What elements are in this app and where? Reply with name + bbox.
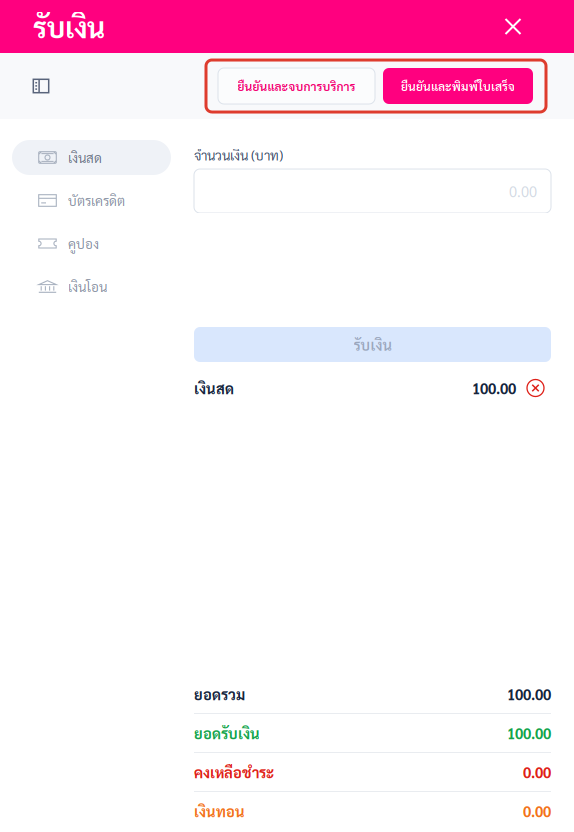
staticText: รับเงิน — [353, 335, 391, 354]
staticText: 0.00 — [509, 181, 537, 201]
button[interactable]: รับเงิน — [194, 327, 551, 362]
staticText: ยอดรวม — [194, 684, 245, 704]
button[interactable]: เงินโอน — [12, 269, 171, 304]
button[interactable]: Close — [491, 4, 535, 48]
button[interactable]: ยืนยันและจบการบริการ — [218, 68, 375, 104]
staticText: 0.00 — [523, 762, 551, 782]
button[interactable]: บัตรเครดิต — [12, 183, 171, 218]
staticText: ยืนยันและจบการบริการ — [237, 78, 355, 94]
staticText: บัตรเครดิต — [68, 192, 125, 209]
staticText: รับเงิน — [33, 8, 105, 45]
staticText: 100.00 — [472, 378, 516, 398]
staticText: คูปอง — [68, 235, 99, 252]
staticText: 0.00 — [523, 801, 551, 821]
staticText: เงินโอน — [68, 278, 107, 295]
staticText: จำนวนเงิน (บาท) — [194, 146, 283, 164]
button[interactable]: ยืนยันและพิมพ์ใบเสร็จ — [383, 68, 533, 104]
staticText: เงินสด — [194, 378, 234, 398]
staticText: เงินทอน — [194, 801, 245, 821]
staticText: 100.00 — [507, 684, 551, 704]
staticText: คงเหลือชำระ — [194, 762, 274, 782]
staticText: เงินสด — [68, 149, 102, 166]
staticText: ยอดรับเงิน — [194, 723, 260, 743]
button[interactable]: เงินสด — [12, 140, 171, 175]
button[interactable]: คูปอง — [12, 226, 171, 261]
staticText: ยืนยันและพิมพ์ใบเสร็จ — [401, 78, 515, 94]
button[interactable]: Toggle sidebar — [19, 64, 63, 108]
button[interactable]: Remove — [526, 378, 545, 397]
staticText: 100.00 — [507, 723, 551, 743]
